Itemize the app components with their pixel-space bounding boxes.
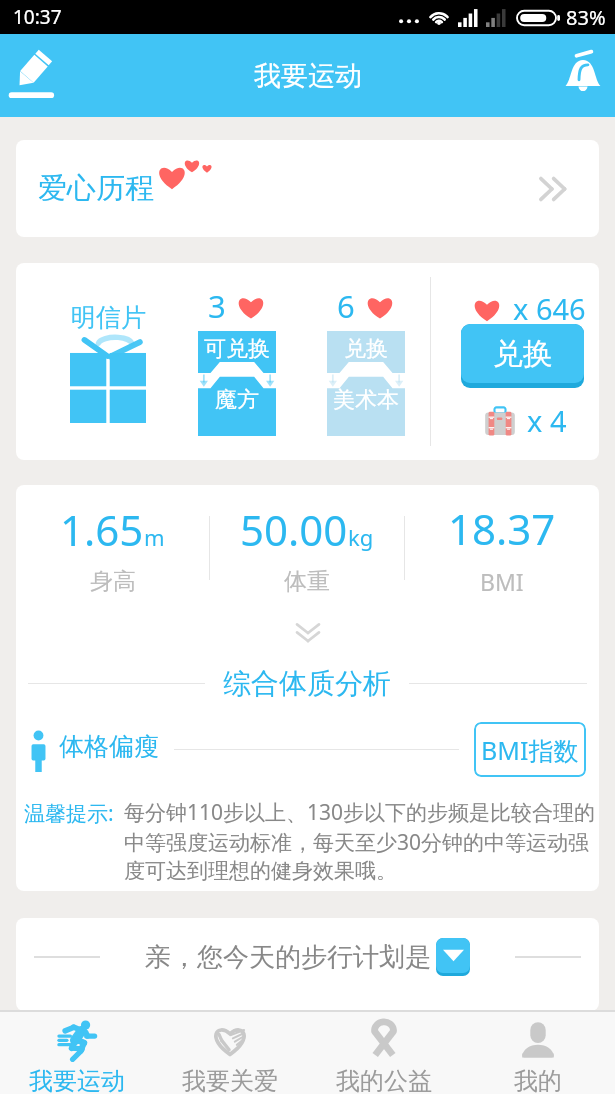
button[interactable]: 我的公益 [307,1012,461,1094]
button[interactable]: 综合体质分析 [205,666,409,701]
staticText: 亲，您今天的步行计划是 [145,941,431,974]
button[interactable]: Notifications [535,34,615,117]
staticText: 魔方 [215,386,259,414]
staticText: 每分钟110步以上、130步以下的步频是比较合理的中等强度运动标准，每天至少30… [124,798,599,884]
staticText: 明信片 [71,302,146,333]
staticText: 兑换 [344,335,388,363]
staticText: 50.00 [240,501,348,558]
button[interactable]: Expand plan [436,938,470,976]
staticText: 兑换 [493,335,553,373]
button[interactable]: 我的 [461,1012,615,1094]
button[interactable]: 明信片 [70,302,146,423]
staticText: 我的公益 [336,1066,432,1094]
staticText: 1.65 [60,501,144,558]
button[interactable]: 爱心历程 [16,140,599,237]
staticText: x 646 [513,289,586,328]
button[interactable]: Edit [0,34,80,117]
staticText: 体格偏瘦 [59,731,159,762]
staticText: kg [348,522,374,552]
staticText: 6 [337,285,355,327]
staticText: 83% [566,4,606,31]
button[interactable]: BMI指数 [474,722,586,777]
button[interactable]: 我要运动 [0,1012,153,1094]
staticText: BMI指数 [481,733,579,767]
staticText: 3 [208,285,226,327]
button[interactable]: 兑换 [461,324,584,388]
staticText: 我要运动 [254,59,362,93]
button[interactable]: 6 [327,285,405,436]
button[interactable]: 3 [198,285,276,436]
staticText: BMI [480,566,524,597]
staticText: 爱心历程 [38,170,154,207]
staticText: m [144,522,165,552]
button[interactable]: 我要关爱 [153,1012,307,1094]
staticText: 温馨提示: [24,799,114,828]
staticText: 我的 [514,1066,562,1094]
staticText: 10:37 [13,4,62,30]
staticText: x 4 [527,401,567,440]
staticText: 体重 [284,567,330,596]
staticText: 18.37 [448,500,556,557]
staticText: 可兑换 [204,335,270,363]
staticText: 我要运动 [29,1066,125,1094]
staticText: 我要关爱 [182,1066,278,1094]
staticText: 身高 [90,567,136,596]
staticText: 美术本 [333,386,399,414]
